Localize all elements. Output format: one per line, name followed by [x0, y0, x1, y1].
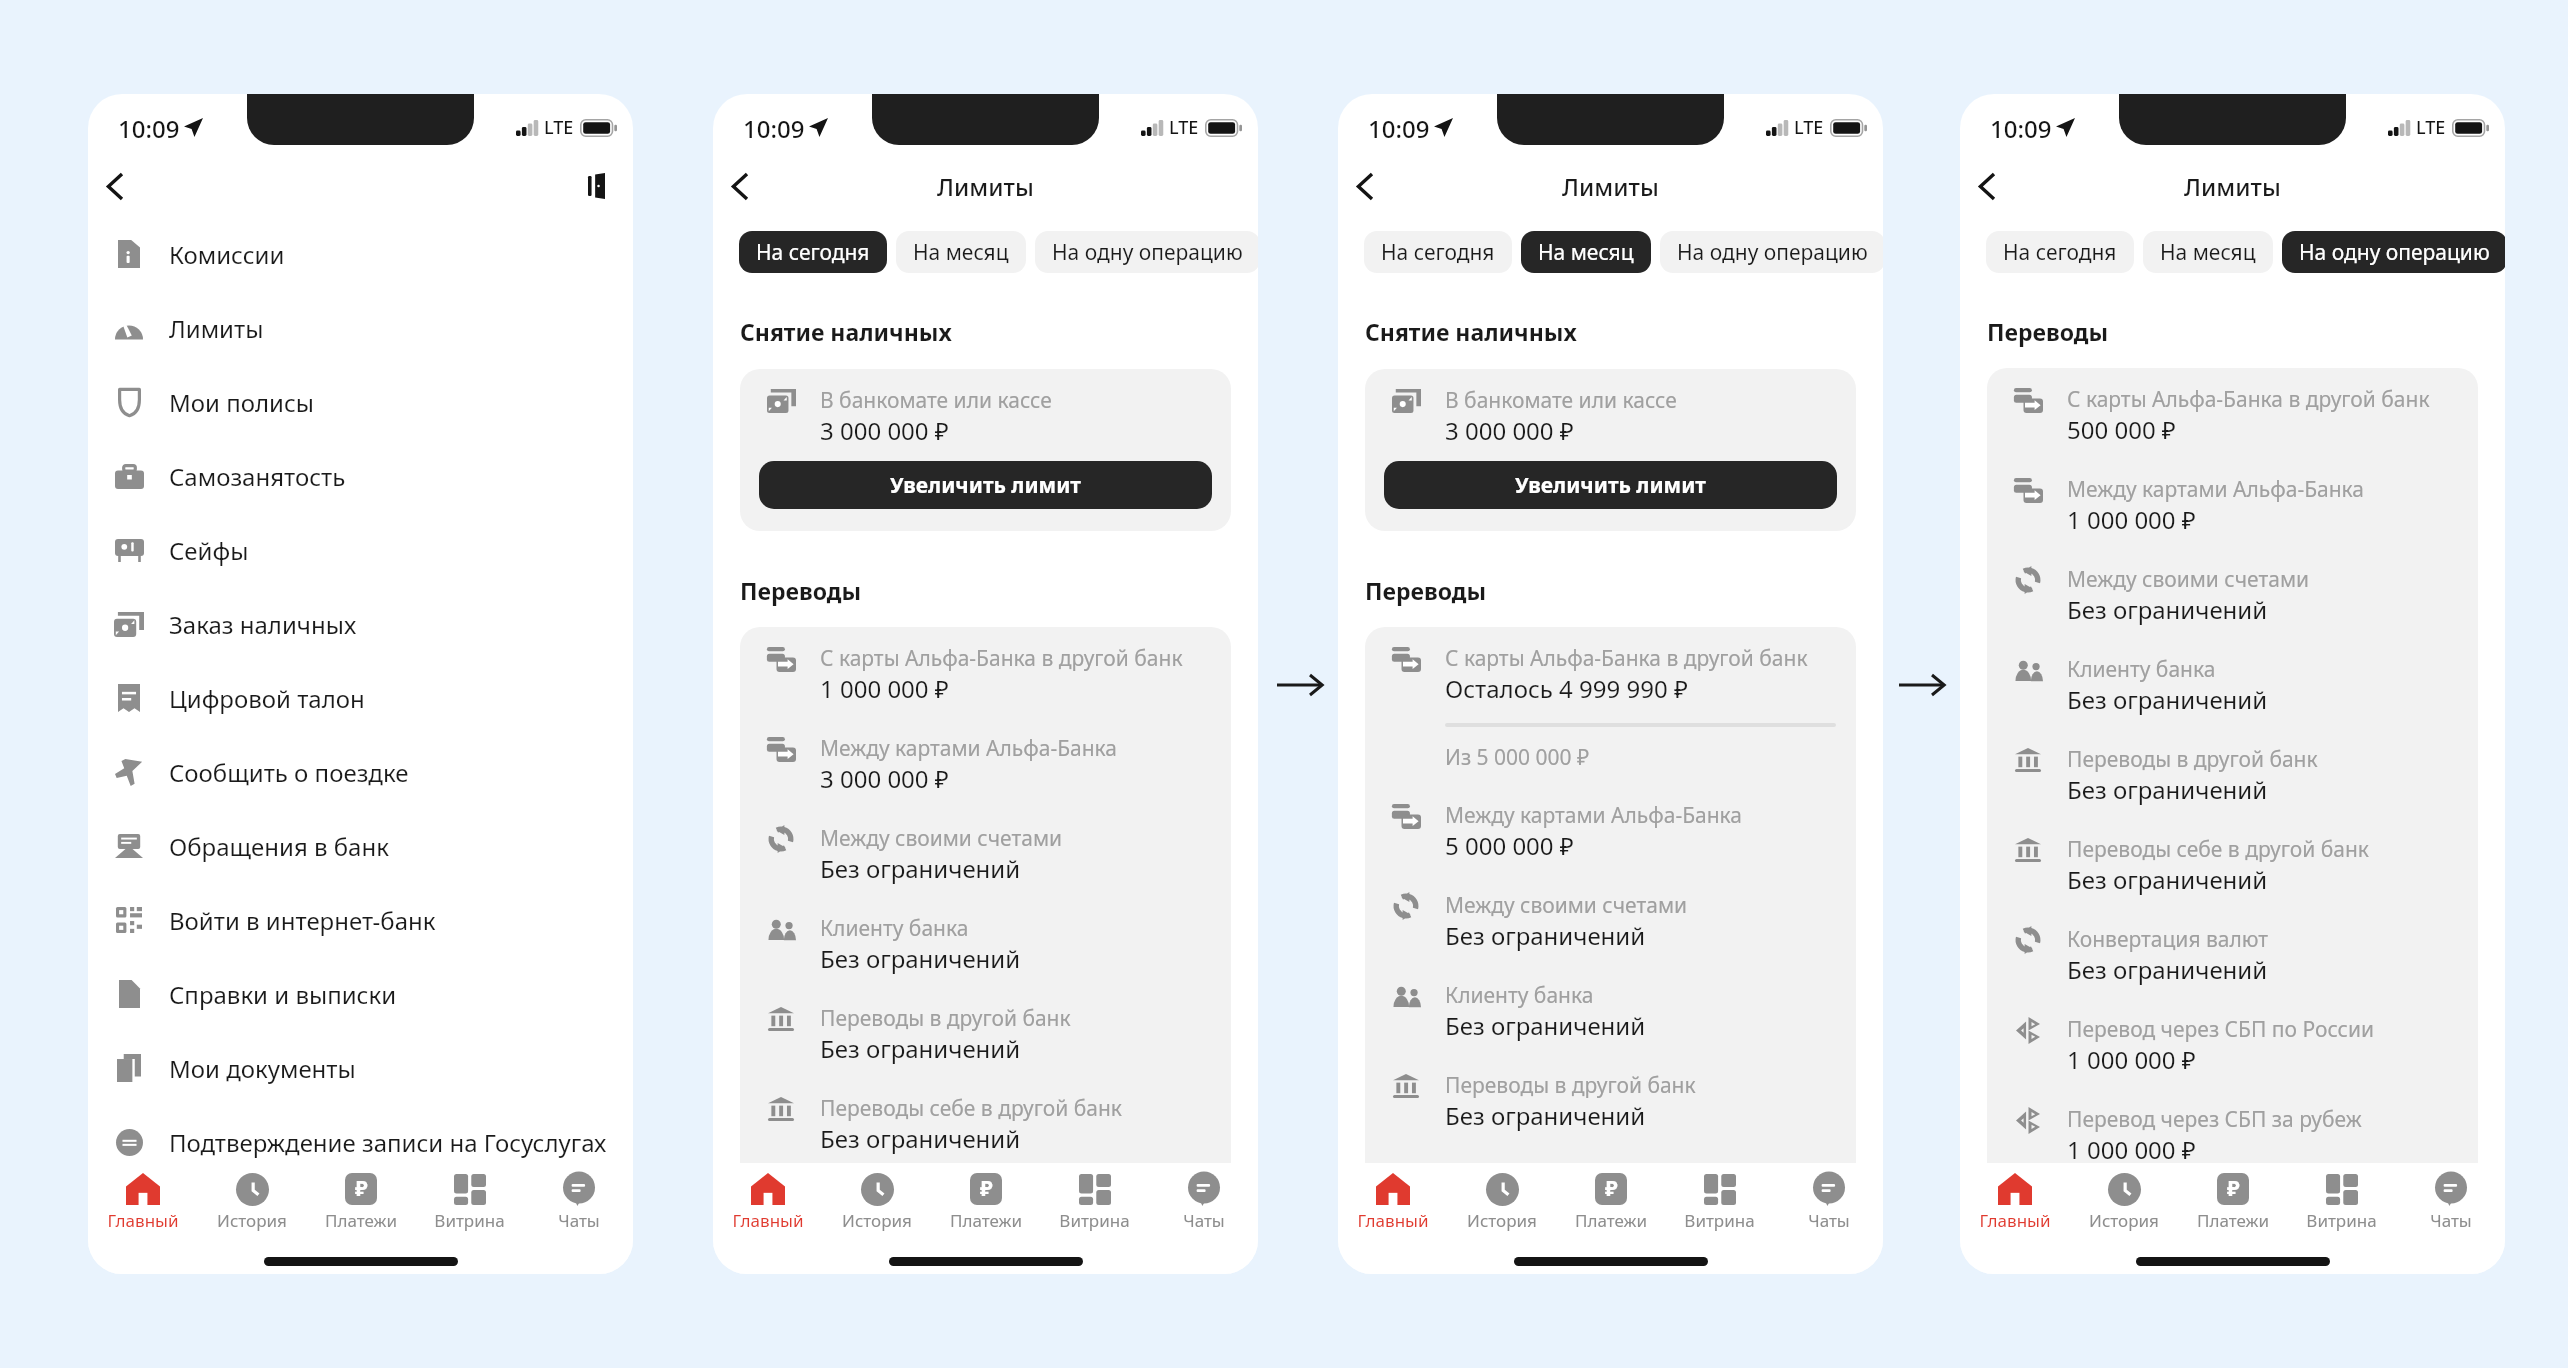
staticText: Переводы	[740, 575, 862, 606]
staticText: Чаты	[2430, 1209, 2472, 1232]
staticText: История	[842, 1209, 912, 1232]
button[interactable]: История	[822, 1163, 931, 1232]
button[interactable]: Увеличить лимит	[1384, 461, 1837, 509]
button[interactable]: Сообщить о поездке	[88, 735, 633, 809]
button[interactable]: Витрина	[1665, 1163, 1774, 1232]
button[interactable]: ₽	[2178, 1163, 2287, 1232]
button[interactable]: Комиссии	[88, 217, 633, 291]
button[interactable]: На сегодня	[739, 231, 887, 273]
button[interactable]: ₽	[306, 1163, 415, 1232]
button[interactable]: В банкомате или кассе	[1365, 369, 1856, 459]
button[interactable]: Чаты	[2396, 1163, 2505, 1232]
staticText: Платежи	[2197, 1209, 2269, 1232]
staticText: Между картами Альфа-Банка	[820, 734, 1118, 763]
button[interactable]: Чаты	[1149, 1163, 1258, 1232]
button[interactable]: Назад	[715, 161, 765, 211]
button[interactable]: Перевод через СБП за рубеж	[1987, 1088, 2478, 1178]
staticText: 10:09	[118, 112, 180, 145]
button[interactable]: Переводы в другой банк	[740, 987, 1231, 1077]
staticText: История	[1467, 1209, 1537, 1232]
button[interactable]: Главный	[1960, 1163, 2069, 1232]
button[interactable]: Назад	[1340, 161, 1390, 211]
button[interactable]: На месяц	[896, 231, 1026, 273]
button[interactable]: Витрина	[2287, 1163, 2396, 1232]
staticText: На одну операцию	[2299, 238, 2490, 267]
button[interactable]: Войти в интернет-банк	[88, 883, 633, 957]
staticText: Без ограничений	[820, 852, 1021, 885]
staticText: Заказ наличных	[169, 608, 357, 641]
button[interactable]: Главный	[713, 1163, 822, 1232]
button[interactable]: История	[2069, 1163, 2178, 1232]
staticText: LTE	[1169, 115, 1199, 140]
button[interactable]: Между картами Альфа-Банка	[740, 717, 1231, 807]
button[interactable]: Лимиты	[88, 291, 633, 365]
button[interactable]: ₽	[931, 1163, 1040, 1232]
button[interactable]: Между своими счетами	[1987, 548, 2478, 638]
button[interactable]: Главный	[1338, 1163, 1447, 1232]
staticText: Между картами Альфа-Банка	[2067, 475, 2365, 504]
button[interactable]: Витрина	[1040, 1163, 1149, 1232]
button[interactable]: Выйти	[571, 161, 621, 211]
button[interactable]: Обращения в банк	[88, 809, 633, 883]
button[interactable]: Конвертация валют	[1987, 908, 2478, 998]
button[interactable]: Клиенту банка	[740, 897, 1231, 987]
button[interactable]: Чаты	[1774, 1163, 1883, 1232]
staticText: Подтверждение записи на Госуслугах	[169, 1126, 607, 1159]
button[interactable]: Справки и выписки	[88, 957, 633, 1031]
staticText: На месяц	[1538, 238, 1634, 267]
staticText: Лимиты	[2184, 170, 2281, 203]
button[interactable]: Подтверждение записи на Госуслугах	[88, 1105, 633, 1179]
button[interactable]: С карты Альфа-Банка в другой банк	[1365, 627, 1856, 723]
staticText: Снятие наличных	[740, 316, 952, 347]
button[interactable]: В банкомате или кассе	[740, 369, 1231, 459]
button[interactable]: Увеличить лимит	[759, 461, 1212, 509]
button[interactable]: Между картами Альфа-Банка	[1987, 458, 2478, 548]
button[interactable]: С карты Альфа-Банка в другой банк	[740, 627, 1231, 717]
button[interactable]: На месяц	[2143, 231, 2273, 273]
staticText: Осталось 4 999 990 ₽	[1445, 672, 1688, 705]
button[interactable]: Переводы себе в другой банк	[740, 1077, 1231, 1167]
button[interactable]: Клиенту банка	[1987, 638, 2478, 728]
staticText: Увеличить лимит	[890, 471, 1081, 500]
button[interactable]: Цифровой талон	[88, 661, 633, 735]
button[interactable]: Назад	[90, 161, 140, 211]
button[interactable]: На одну операцию	[1035, 231, 1258, 273]
staticText: Перевод через СБП за рубеж	[2067, 1105, 2362, 1134]
button[interactable]: Назад	[1962, 161, 2012, 211]
staticText: С карты Альфа-Банка в другой банк	[820, 644, 1183, 673]
staticText: 10:09	[743, 112, 805, 145]
button[interactable]: На одну операцию	[1660, 231, 1883, 273]
button[interactable]: Между картами Альфа-Банка	[1365, 784, 1856, 874]
button[interactable]: Чаты	[524, 1163, 633, 1232]
button[interactable]: Витрина	[415, 1163, 524, 1232]
staticText: Клиенту банка	[820, 914, 969, 943]
button[interactable]: Перевод через СБП по России	[1987, 998, 2478, 1088]
button[interactable]: Сейфы	[88, 513, 633, 587]
button[interactable]: На сегодня	[1364, 231, 1512, 273]
button[interactable]: На месяц	[1521, 231, 1651, 273]
button[interactable]: Между своими счетами	[740, 807, 1231, 897]
staticText: Без ограничений	[1445, 919, 1646, 952]
button[interactable]: ₽	[1556, 1163, 1665, 1232]
button[interactable]: Клиенту банка	[1365, 964, 1856, 1054]
button[interactable]: На сегодня	[1986, 231, 2134, 273]
button[interactable]: Между своими счетами	[1365, 874, 1856, 964]
button[interactable]: Мои полисы	[88, 365, 633, 439]
button[interactable]: Переводы в другой банк	[1987, 728, 2478, 818]
button[interactable]: Мои документы	[88, 1031, 633, 1105]
button[interactable]: Переводы себе в другой банк	[1987, 818, 2478, 908]
staticText: Обращения в банк	[169, 830, 389, 863]
button[interactable]: С карты Альфа-Банка в другой банк	[1987, 368, 2478, 458]
staticText: Без ограничений	[820, 1122, 1021, 1155]
staticText: ₽	[2227, 1174, 2240, 1203]
staticText: Платежи	[325, 1209, 397, 1232]
button[interactable]: Самозанятость	[88, 439, 633, 513]
staticText: 1 000 000 ₽	[2067, 503, 2196, 536]
button[interactable]: Главный	[88, 1163, 197, 1232]
button[interactable]: Заказ наличных	[88, 587, 633, 661]
button[interactable]: История	[197, 1163, 306, 1232]
button[interactable]: На одну операцию	[2282, 231, 2505, 273]
button[interactable]: История	[1447, 1163, 1556, 1232]
staticText: Переводы	[1987, 316, 2109, 347]
button[interactable]: Переводы в другой банк	[1365, 1054, 1856, 1144]
